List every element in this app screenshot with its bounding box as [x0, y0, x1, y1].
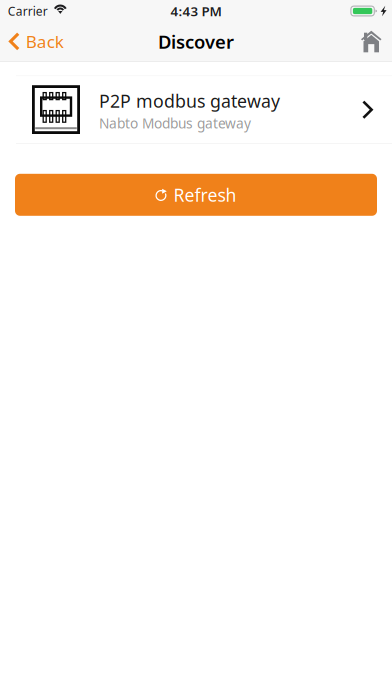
staticText: Carrier — [8, 3, 48, 19]
staticText: Back — [26, 30, 64, 53]
button[interactable]: P2P modbus gateway — [0, 76, 392, 143]
staticText: Nabto Modbus gateway — [99, 114, 251, 133]
button[interactable]: Refresh — [15, 174, 377, 216]
staticText: P2P modbus gateway — [99, 89, 280, 113]
button[interactable]: Back — [0, 21, 74, 61]
staticText: Refresh — [173, 183, 236, 207]
button[interactable]: Home — [349, 21, 392, 61]
staticText: 4:43 PM — [170, 2, 221, 20]
staticText: Discover — [158, 29, 234, 54]
